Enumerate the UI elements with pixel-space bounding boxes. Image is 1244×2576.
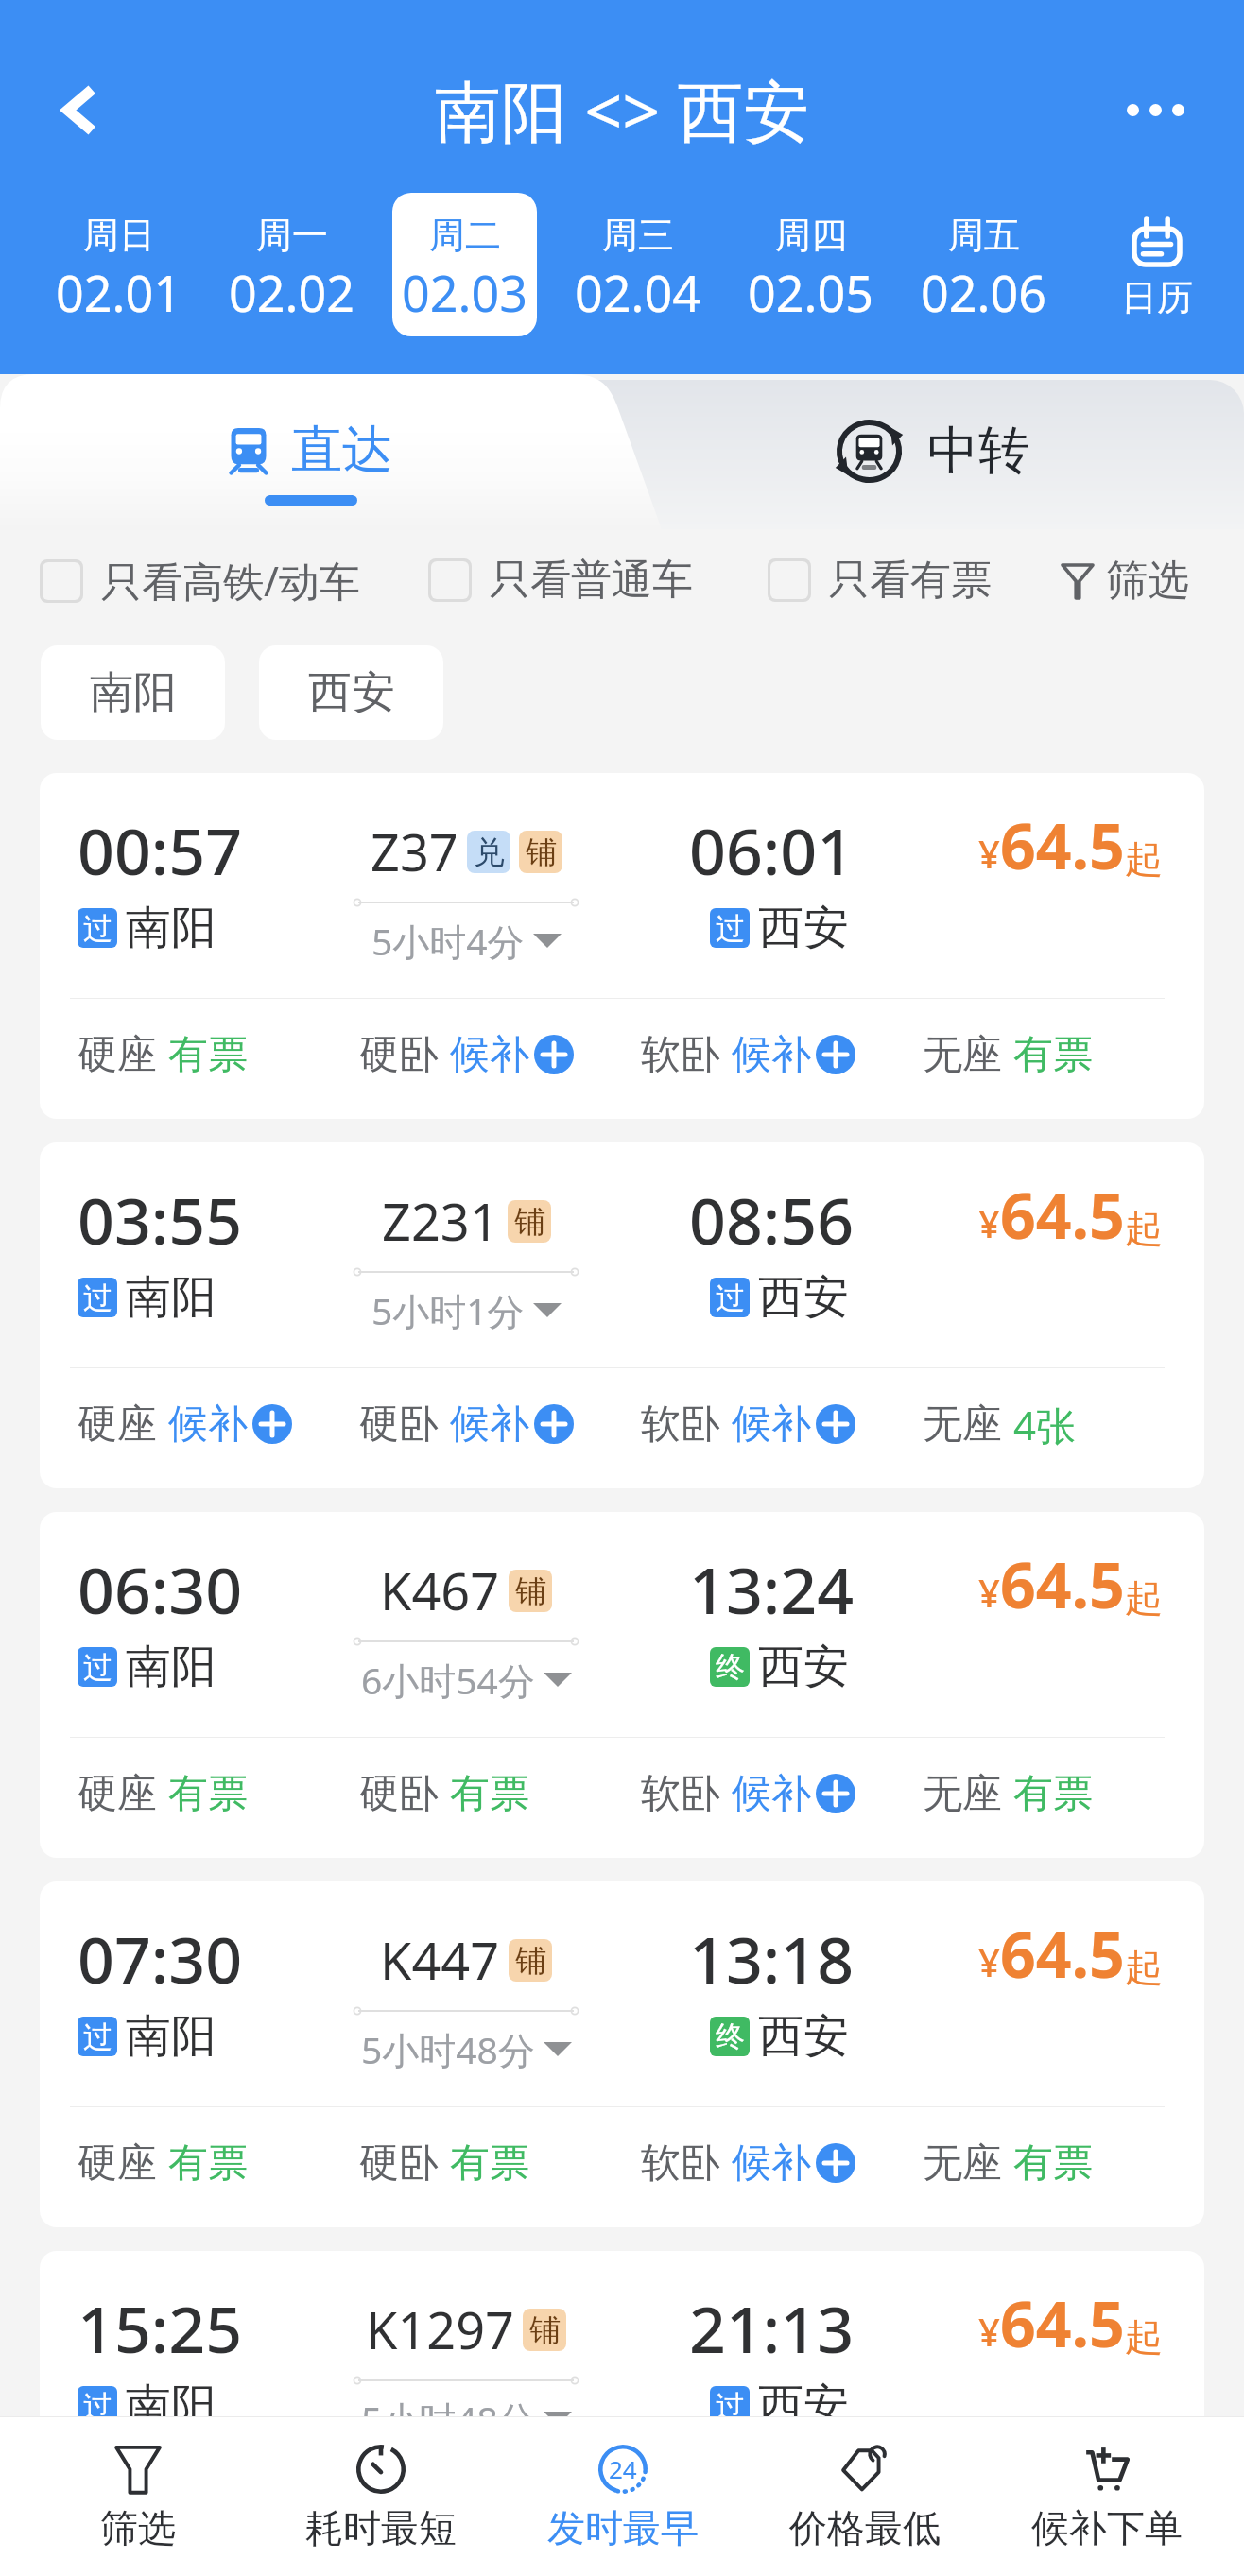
staticText: 64.5 (1000, 1911, 1125, 1996)
staticText: 02.06 (921, 259, 1046, 326)
staticText: Z37 (371, 816, 458, 886)
button[interactable]: 日历 (1070, 193, 1244, 336)
staticText: 周三 (602, 213, 674, 258)
button[interactable]: 03:55 (40, 1142, 1204, 1488)
staticText: 00:57 (78, 806, 243, 894)
button[interactable]: 00:57 (40, 773, 1204, 1119)
staticText: 软卧 (641, 1030, 720, 1080)
button[interactable]: 周一 (219, 193, 364, 336)
staticText: 02.04 (575, 259, 700, 326)
staticText: 4张 (1013, 1398, 1077, 1451)
button[interactable]: 07:30 (40, 1881, 1204, 2227)
staticText: 07:30 (78, 1915, 243, 2002)
staticText: 无座 (923, 1769, 1002, 1819)
button[interactable]: 筛选 (16, 2416, 259, 2576)
staticText: 硬卧 (359, 2487, 439, 2537)
staticText: 周四 (775, 213, 847, 258)
staticText: 有票 (1013, 2487, 1093, 2537)
staticText: 有票 (450, 2487, 529, 2537)
button[interactable]: 价格最低 (744, 2416, 986, 2576)
staticText: 周日 (83, 213, 155, 258)
staticText: 铺 (529, 2310, 561, 2350)
button[interactable]: 筛选 (1061, 555, 1189, 607)
button[interactable]: 15:25 (40, 2251, 1204, 2576)
staticText: 候补 (168, 1400, 248, 1450)
staticText: 南阳 (90, 665, 177, 720)
button[interactable]: 24 (502, 2416, 744, 2576)
staticText: 有票 (168, 2138, 248, 2189)
button[interactable]: 周五 (911, 193, 1056, 336)
staticText: ¥ (978, 828, 1000, 879)
staticText: 有票 (168, 1769, 248, 1819)
button[interactable]: 周日 (46, 193, 191, 336)
staticText: 候补 (732, 1030, 811, 1080)
staticText: 起 (1125, 1205, 1163, 1252)
staticText: 筛选 (100, 2504, 176, 2551)
button[interactable]: 周二 (392, 193, 537, 336)
staticText: 过 (83, 910, 112, 947)
staticText: 起 (1125, 1574, 1163, 1622)
staticText: 软卧 (641, 1400, 720, 1450)
staticText: 无座 (923, 2138, 1002, 2189)
staticText: 64.5 (1000, 1541, 1125, 1626)
staticText: 周二 (429, 213, 501, 258)
staticText: 只看有票 (829, 555, 992, 606)
staticText: 有票 (450, 1769, 529, 1819)
staticText: 只看普通车 (490, 555, 693, 606)
staticText: 过 (83, 1279, 112, 1316)
staticText: 13:24 (689, 1545, 855, 1633)
staticText: 5小时48分 (361, 2394, 535, 2444)
staticText: 过 (83, 2018, 112, 2055)
staticText: 南阳 (126, 2008, 216, 2065)
staticText: 02.02 (229, 259, 354, 326)
staticText: 06:30 (78, 1545, 243, 1633)
button[interactable]: 周三 (565, 193, 710, 336)
staticText: 硬座 (78, 1030, 157, 1080)
button[interactable]: 只看普通车 (428, 555, 693, 606)
staticText: 铺 (515, 1941, 546, 1981)
button[interactable]: 06:30 (40, 1512, 1204, 1858)
staticText: 终 (716, 2018, 745, 2055)
staticText: 西安 (758, 2378, 849, 2434)
button[interactable]: More options (1100, 62, 1210, 157)
staticText: 软卧 (641, 2487, 720, 2537)
staticText: 价格最低 (789, 2504, 941, 2551)
staticText: 硬座 (78, 1400, 157, 1450)
staticText: 6小时54分 (361, 1655, 535, 1705)
staticText: 软卧 (641, 2138, 720, 2189)
staticText: 有票 (168, 1030, 248, 1080)
button[interactable]: 耗时最短 (259, 2416, 502, 2576)
staticText: 硬卧 (359, 1769, 439, 1819)
staticText: 候补 (732, 2487, 811, 2537)
button[interactable]: 只看有票 (768, 555, 992, 606)
staticText: 只看高铁/动车 (101, 553, 360, 609)
staticText: 64.5 (1000, 2280, 1125, 2365)
staticText: 08:56 (689, 1176, 855, 1263)
staticText: ¥ (978, 1936, 1000, 1987)
staticText: 硬卧 (359, 2138, 439, 2189)
staticText: 02.01 (56, 259, 181, 326)
staticText: 过 (716, 1279, 745, 1316)
button[interactable]: 只看高铁/动车 (40, 553, 360, 609)
button[interactable]: 南阳 (41, 645, 225, 740)
button[interactable]: 西安 (259, 645, 443, 740)
staticText: 过 (716, 910, 745, 947)
staticText: 兑 (474, 833, 505, 872)
button[interactable]: Back (23, 53, 136, 166)
staticText: 硬座 (78, 2487, 157, 2537)
staticText: 候补下单 (1031, 2504, 1183, 2551)
staticText: 南阳 (126, 900, 216, 956)
staticText: 02.05 (748, 259, 873, 326)
staticText: ¥ (978, 1197, 1000, 1248)
staticText: 起 (1125, 1944, 1163, 1991)
button[interactable]: 中转 (622, 374, 1244, 529)
staticText: 过 (716, 2388, 745, 2425)
button[interactable]: 周四 (738, 193, 883, 336)
staticText: 铺 (526, 833, 557, 872)
staticText: 候补 (732, 1400, 811, 1450)
staticText: ¥ (978, 1567, 1000, 1618)
button[interactable]: 候补下单 (986, 2416, 1228, 2576)
button[interactable]: 直达 (0, 374, 622, 529)
staticText: 硬座 (78, 2138, 157, 2189)
staticText: 铺 (514, 1202, 545, 1242)
